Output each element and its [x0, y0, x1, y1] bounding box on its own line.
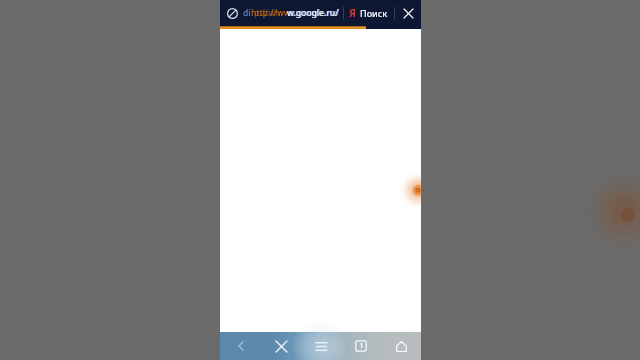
button[interactable]: Back [220, 332, 261, 360]
staticText: di w.google.ru/ [243, 7, 340, 19]
button[interactable]: Menu [301, 332, 341, 360]
staticText: Поиск [360, 7, 388, 19]
button[interactable]: Close [395, 0, 421, 26]
staticText: http://ww [251, 7, 291, 19]
button[interactable]: Home [381, 332, 421, 360]
staticText: 1 [359, 341, 364, 351]
staticText: w.google.ru/ [287, 7, 339, 19]
staticText: Я [349, 6, 356, 20]
staticText: p://wh [254, 7, 281, 19]
button[interactable]: di w.google.ru/ [243, 0, 343, 26]
button[interactable]: Tabs, 1 open [341, 332, 381, 360]
button[interactable]: Stop loading [261, 332, 301, 360]
button[interactable]: Site info [224, 5, 240, 21]
button[interactable]: Я [349, 0, 388, 26]
